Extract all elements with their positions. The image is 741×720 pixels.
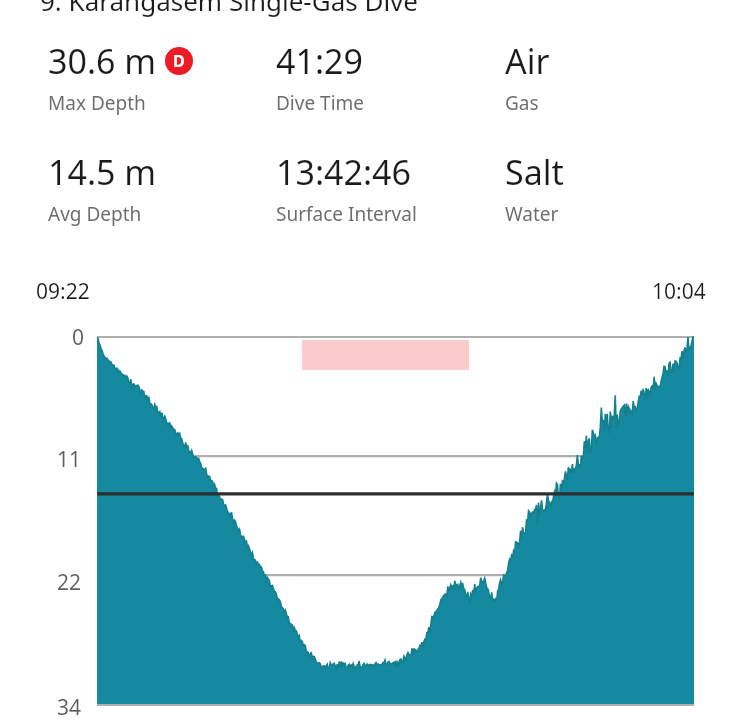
button[interactable]: Air <box>505 38 685 116</box>
staticText: 22 <box>57 568 82 597</box>
button[interactable]: 14.5 m <box>48 149 276 227</box>
staticText: Salt <box>505 149 564 195</box>
button[interactable]: 41:29 <box>276 38 505 116</box>
staticText: Surface Interval <box>276 201 417 227</box>
staticText: 10:04 <box>652 277 706 306</box>
staticText: 0 <box>72 323 85 352</box>
other: Decompression dive <box>165 47 193 75</box>
button[interactable]: Dive depth profile chart <box>0 320 741 720</box>
button[interactable]: 9. Karangasem Single-Gas Dive <box>40 0 741 18</box>
staticText: D <box>173 50 185 72</box>
staticText: Gas <box>505 90 539 116</box>
staticText: 09:22 <box>36 277 90 306</box>
staticText: 34 <box>57 693 82 720</box>
staticText: 14.5 m <box>48 149 157 195</box>
staticText: 13:42:46 <box>276 149 411 195</box>
button[interactable]: 30.6 m <box>48 38 276 116</box>
button[interactable]: 13:42:46 <box>276 149 505 227</box>
staticText: Water <box>505 201 559 227</box>
staticText: Avg Depth <box>48 201 142 227</box>
staticText: 30.6 m <box>48 38 157 84</box>
button[interactable]: Salt <box>505 149 685 227</box>
staticText: Max Depth <box>48 90 146 116</box>
staticText: 9. Karangasem Single-Gas Dive <box>40 0 418 18</box>
staticText: Air <box>505 38 550 84</box>
staticText: 41:29 <box>276 38 363 84</box>
staticText: Dive Time <box>276 90 365 116</box>
staticText: 11 <box>57 445 82 474</box>
